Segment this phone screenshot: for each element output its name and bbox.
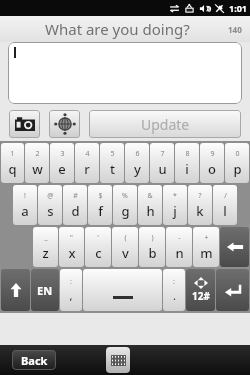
staticText: w [32, 160, 43, 178]
staticText: @ [47, 191, 54, 201]
staticText: d [71, 202, 80, 220]
button[interactable]: Shift [1, 269, 30, 311]
staticText: a [21, 202, 29, 220]
staticText: 9 [210, 149, 215, 159]
staticText: # [73, 191, 78, 201]
staticText: q [8, 160, 17, 178]
staticText: n [175, 244, 184, 262]
staticText: j [173, 202, 177, 220]
button[interactable]: Update [89, 110, 241, 138]
staticText: ? [198, 191, 202, 201]
button[interactable]: _ [33, 227, 58, 267]
button[interactable]: - [166, 227, 192, 267]
button[interactable]: 4 [75, 143, 99, 183]
staticText: + [204, 233, 209, 243]
staticText: _ [44, 233, 48, 243]
button[interactable]: 0 [225, 143, 249, 183]
staticText: x [68, 244, 76, 262]
staticText: $ [98, 191, 103, 201]
staticText: l [223, 202, 227, 220]
staticText: " [70, 233, 73, 243]
button[interactable]: Keyboard [106, 347, 130, 373]
staticText: u [158, 160, 167, 178]
staticText: 12# [192, 289, 210, 303]
staticText: h [146, 202, 155, 220]
button[interactable]: @ [38, 185, 62, 225]
button[interactable]: : [60, 269, 82, 311]
button[interactable]: 8 [175, 143, 199, 183]
staticText: f [98, 202, 103, 220]
staticText: c [95, 244, 102, 262]
button[interactable]: ' [85, 227, 111, 267]
staticText: 8 [185, 149, 190, 159]
staticText: v [122, 244, 129, 262]
button[interactable]: 12# [186, 269, 215, 311]
staticText: % [122, 191, 128, 201]
button[interactable]: % [113, 185, 137, 225]
button[interactable]: EN [31, 269, 59, 311]
button[interactable]: Space [83, 269, 162, 311]
button[interactable]: & [138, 185, 162, 225]
button[interactable]: " [59, 227, 84, 267]
button[interactable]: $ [88, 185, 112, 225]
staticText: ) [151, 233, 154, 243]
staticText: 2 [35, 149, 40, 159]
staticText: p [233, 160, 242, 178]
button[interactable]: Back [12, 350, 56, 370]
staticText: i [185, 160, 189, 178]
staticText: y [134, 160, 141, 178]
staticText: o [208, 160, 216, 178]
staticText: : [173, 277, 175, 287]
staticText: ' [97, 233, 99, 243]
staticText: 1:01 [229, 2, 247, 14]
button[interactable]: 7 [150, 143, 174, 183]
button[interactable]: 2 [25, 143, 49, 183]
button[interactable]: : [163, 269, 185, 311]
staticText: & [147, 191, 153, 201]
staticText: / [224, 191, 227, 201]
button[interactable]: ? [188, 185, 212, 225]
staticText: . [173, 288, 176, 303]
staticText: k [196, 202, 204, 220]
staticText: 6 [135, 149, 140, 159]
staticText: 4 [85, 149, 90, 159]
button[interactable]: # [63, 185, 87, 225]
button[interactable]: + [193, 227, 219, 267]
staticText: Update [141, 115, 190, 134]
staticText: ! [24, 191, 26, 201]
staticText: ( [124, 233, 127, 243]
button[interactable]: Backspace [220, 227, 249, 267]
staticText: 5 [110, 149, 115, 159]
button[interactable]: ) [139, 227, 165, 267]
staticText: EN [37, 283, 53, 298]
staticText: 3 [60, 149, 65, 159]
staticText: , [69, 288, 73, 303]
button[interactable]: 3 [50, 143, 74, 183]
staticText: What are you doing? [45, 19, 190, 39]
staticText: * [173, 191, 177, 201]
staticText: 7 [160, 149, 165, 159]
button[interactable]: Location [49, 110, 80, 138]
button[interactable]: 9 [200, 143, 224, 183]
button[interactable]: 1 [1, 143, 24, 183]
staticText: - [178, 233, 181, 243]
button[interactable]: / [213, 185, 237, 225]
staticText: g [121, 202, 130, 220]
button[interactable]: ! [13, 185, 37, 225]
staticText: m [200, 244, 213, 262]
button[interactable]: Enter [216, 269, 249, 311]
staticText: 140 [228, 24, 242, 35]
button[interactable] [8, 42, 242, 104]
button[interactable]: ( [112, 227, 138, 267]
staticText: r [84, 160, 90, 178]
button[interactable]: 5 [100, 143, 124, 183]
staticText: : [70, 277, 72, 287]
staticText: e [58, 160, 66, 178]
staticText: s [47, 202, 54, 220]
button[interactable]: Camera [9, 110, 40, 138]
button[interactable]: * [163, 185, 187, 225]
staticText: Back [21, 353, 48, 368]
button[interactable]: 6 [125, 143, 149, 183]
staticText: b [148, 244, 157, 262]
staticText: 1 [10, 149, 15, 159]
